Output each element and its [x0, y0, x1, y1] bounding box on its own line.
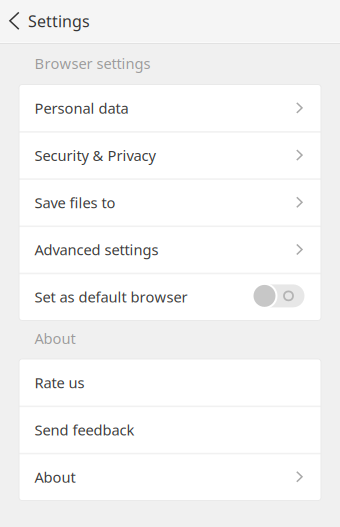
staticText: Rate us [34, 373, 84, 392]
button[interactable]: Back [0, 0, 28, 42]
button[interactable]: Personal data [19, 84, 321, 132]
staticText: Browser settings [34, 53, 150, 73]
button[interactable]: About [19, 453, 321, 501]
staticText: Send feedback [34, 420, 134, 439]
button[interactable]: Save files to [19, 179, 321, 226]
staticText: Settings [28, 10, 90, 32]
staticText: About [34, 467, 75, 487]
staticText: Advanced settings [34, 240, 158, 259]
button[interactable]: Advanced settings [19, 226, 321, 273]
button[interactable]: Set as default browser [19, 273, 321, 320]
staticText: Security & Privacy [34, 145, 155, 165]
button[interactable]: Security & Privacy [19, 132, 321, 179]
staticText: About [34, 329, 75, 348]
staticText: Save files to [34, 193, 115, 212]
staticText: Set as default browser [34, 287, 187, 307]
button[interactable]: Send feedback [19, 406, 321, 453]
button[interactable]: Rate us [19, 359, 321, 406]
staticText: Personal data [34, 98, 128, 118]
